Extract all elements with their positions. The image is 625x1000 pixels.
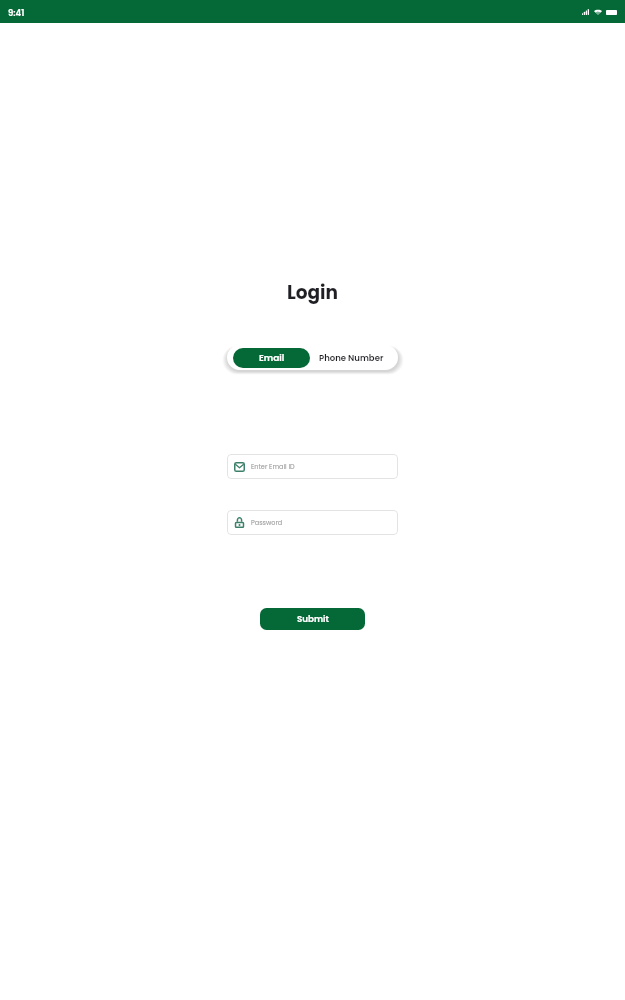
button[interactable]: Password — [227, 510, 398, 535]
staticText: 9:41 — [8, 7, 25, 19]
staticText: Enter Email ID — [251, 462, 295, 471]
other: Email — [234, 462, 245, 472]
button[interactable]: Submit — [260, 608, 365, 630]
button[interactable]: Phone Number — [310, 345, 392, 370]
button[interactable]: Email — [227, 454, 398, 479]
button[interactable]: Email — [233, 348, 310, 368]
other: Cellular signal — [582, 9, 589, 15]
staticText: Email — [259, 352, 285, 365]
staticText: Submit — [297, 613, 329, 625]
other: Battery — [606, 10, 617, 15]
staticText: Phone Number — [319, 352, 384, 364]
staticText: Login — [0, 280, 625, 306]
other: Wi-Fi — [594, 9, 602, 15]
staticText: Password — [251, 518, 283, 527]
other: Password — [234, 516, 245, 529]
